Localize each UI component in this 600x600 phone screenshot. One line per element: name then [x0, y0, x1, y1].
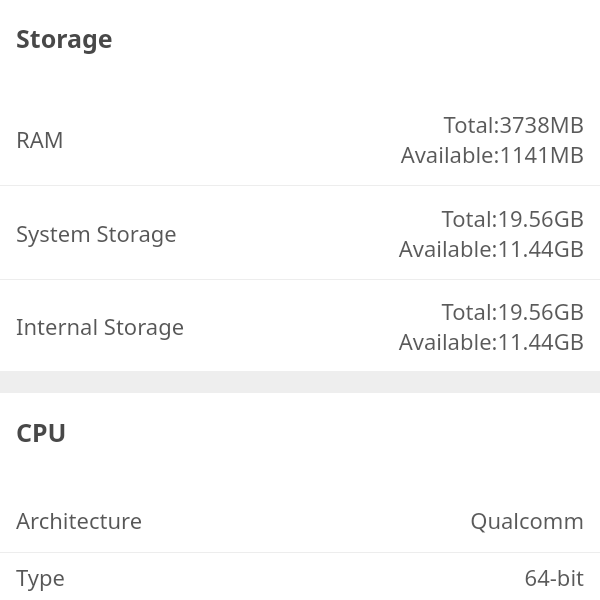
staticText: Total:19.56GB — [441, 296, 584, 326]
staticText: Storage — [16, 21, 113, 55]
button[interactable]: System Storage — [0, 186, 600, 279]
staticText: Type — [16, 562, 512, 592]
staticText: Architecture — [16, 505, 458, 535]
button[interactable]: Architecture — [0, 487, 600, 552]
staticText: Available:1141MB — [400, 139, 584, 169]
staticText: RAM — [16, 124, 388, 154]
button[interactable]: Type — [0, 553, 600, 600]
staticText: Internal Storage — [16, 311, 386, 341]
staticText: Available:11.44GB — [398, 326, 584, 356]
staticText: Qualcomm — [470, 505, 584, 535]
button[interactable]: RAM — [0, 92, 600, 185]
button[interactable]: Internal Storage — [0, 280, 600, 371]
staticText: 64-bit — [524, 562, 584, 592]
staticText: CPU — [16, 415, 67, 449]
staticText: System Storage — [16, 218, 386, 248]
staticText: Total:19.56GB — [441, 203, 584, 233]
staticText: Available:11.44GB — [398, 233, 584, 263]
staticText: Total:3738MB — [443, 109, 584, 139]
